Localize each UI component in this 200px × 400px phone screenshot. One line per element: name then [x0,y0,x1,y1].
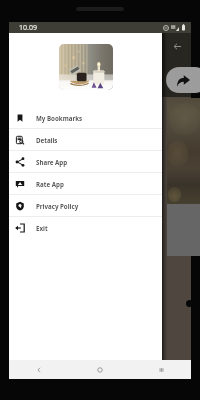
button[interactable]: Exit [9,217,162,238]
button[interactable]: Share App [9,151,162,172]
staticText: My Bookmarks [36,114,83,122]
button[interactable]: Back [167,38,187,54]
button[interactable]: My Bookmarks [9,107,162,128]
staticText: Privacy Policy [36,202,79,210]
staticText: Details [36,136,58,144]
button[interactable]: Home [69,360,130,379]
button[interactable]: Share [166,67,200,93]
button[interactable]: Rate App [9,173,162,194]
staticText: 10.09 [19,23,37,33]
button[interactable]: Recent apps [130,360,191,379]
staticText: Exit [36,224,48,232]
button[interactable]: Details [9,129,162,150]
staticText: Share App [36,158,68,166]
staticText: Rate App [36,180,64,188]
button[interactable]: Privacy Policy [9,195,162,216]
button[interactable]: Back [9,360,69,379]
